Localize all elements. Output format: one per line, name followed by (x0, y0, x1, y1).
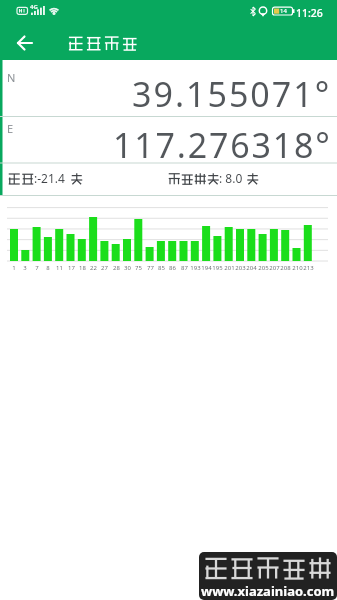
staticText: 3 (23, 264, 27, 272)
staticText: 195 (212, 264, 223, 272)
staticText: 85 (158, 264, 165, 272)
staticText: 208 (280, 264, 291, 272)
button[interactable]: www.xiazainiao.com (199, 582, 337, 600)
staticText: 201 (224, 264, 235, 272)
staticText: 75 (135, 264, 142, 272)
staticText: 18 (79, 264, 86, 272)
staticText: 11:26 (296, 6, 323, 20)
staticText: 77 (147, 264, 154, 272)
staticText: 1 (12, 264, 16, 272)
staticText: N (7, 70, 16, 85)
staticText: 28 (113, 264, 120, 272)
staticText: 210 (292, 264, 303, 272)
staticText: 4G (30, 3, 38, 11)
button[interactable] (8, 28, 48, 58)
staticText: 87 (181, 264, 188, 272)
staticText: 194 (201, 264, 212, 272)
staticText: www.xiazainiao.com (201, 582, 335, 600)
staticText: E (7, 121, 14, 136)
staticText: 203 (235, 264, 246, 272)
staticText: 14 (280, 7, 287, 15)
staticText: 39.155071° (132, 71, 332, 117)
staticText: 207 (269, 264, 280, 272)
staticText: 27 (101, 264, 108, 272)
staticText: 86 (169, 264, 176, 272)
staticText: 193 (190, 264, 201, 272)
staticText: 22 (90, 264, 97, 272)
staticText: 213 (303, 264, 314, 272)
staticText: 205 (258, 264, 269, 272)
staticText: : 8.0 (219, 170, 243, 186)
staticText: 117.276318° (113, 122, 332, 168)
staticText: 8 (46, 264, 50, 272)
staticText: 11 (56, 264, 63, 272)
staticText: 30 (124, 264, 131, 272)
staticText: 204 (246, 264, 257, 272)
staticText: 17 (68, 264, 75, 272)
staticText: :-21.4 (34, 170, 65, 186)
staticText: 7 (35, 264, 39, 272)
